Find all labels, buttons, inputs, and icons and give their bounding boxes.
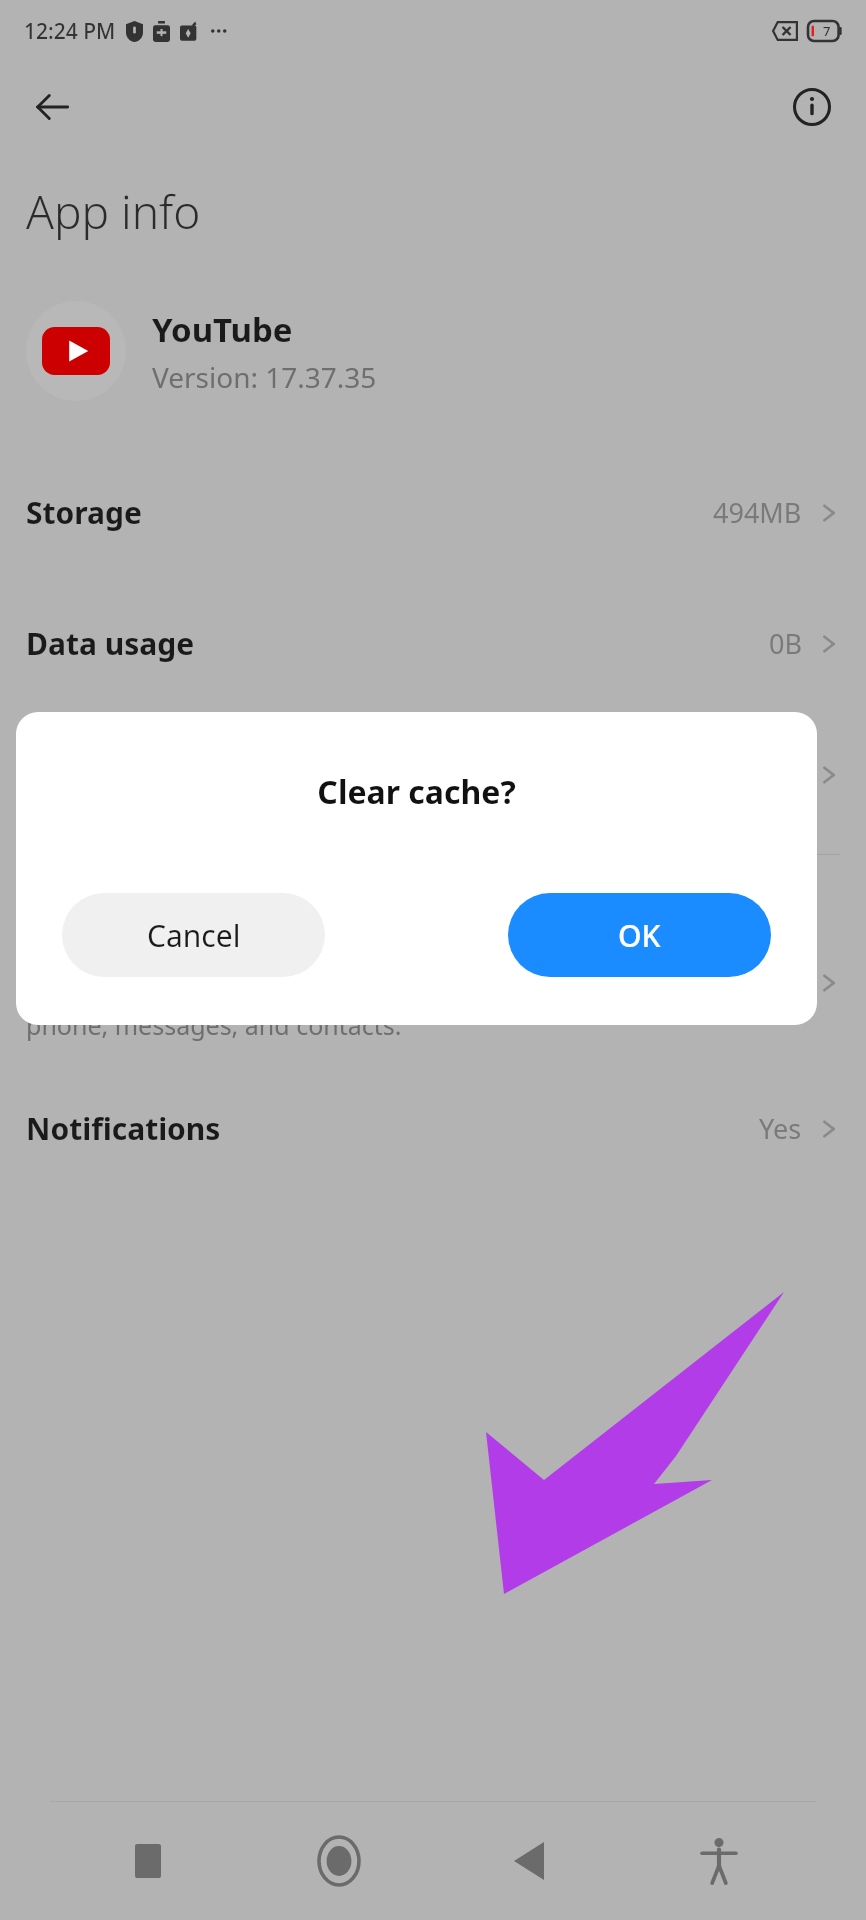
button[interactable]: OK: [508, 893, 771, 977]
staticText: Yes: [759, 1110, 802, 1147]
staticText: OK: [618, 915, 661, 956]
staticText: Manage permissions related to location, …: [26, 973, 601, 1043]
staticText: App info: [26, 180, 201, 243]
staticText: Data usage: [26, 623, 195, 664]
button[interactable]: Recents: [105, 1818, 191, 1904]
staticText: 12:24 PM: [24, 17, 116, 46]
staticText: 494MB: [713, 494, 802, 531]
button[interactable]: Notifications: [0, 1063, 866, 1194]
staticText: 0B: [769, 625, 802, 662]
staticText: Storage: [26, 492, 142, 533]
staticText: Cancel: [147, 915, 241, 956]
staticText: App permissions: [26, 922, 274, 963]
staticText: Notifications: [26, 1108, 221, 1149]
button[interactable]: Data usage: [0, 578, 866, 709]
staticText: Version: 17.37.35: [152, 358, 377, 396]
staticText: Clear cache?: [317, 770, 516, 814]
button[interactable]: Accessibility: [676, 1818, 762, 1904]
staticText: YouTube: [152, 307, 293, 352]
button[interactable]: Battery: [0, 709, 866, 840]
button[interactable]: Cancel: [62, 893, 325, 977]
button[interactable]: Storage: [0, 447, 866, 578]
button[interactable]: Back: [486, 1818, 572, 1904]
button[interactable]: Back: [22, 77, 82, 137]
button[interactable]: App permissions: [0, 918, 866, 1047]
staticText: Permissions: [26, 877, 123, 900]
button[interactable]: App details: [782, 77, 842, 137]
button[interactable]: Home: [296, 1818, 382, 1904]
staticText: 7: [823, 22, 831, 40]
button[interactable]: YouTube: [26, 301, 840, 401]
